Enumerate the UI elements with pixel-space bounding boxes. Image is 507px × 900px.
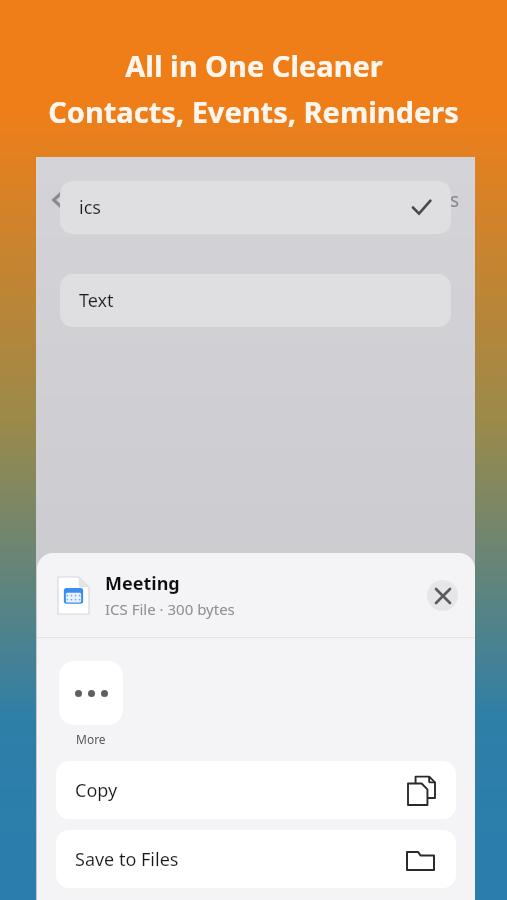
- button[interactable]: Text: [60, 274, 451, 327]
- staticText: Back: [73, 187, 116, 213]
- staticText: ICS File · 300 bytes: [105, 599, 235, 619]
- staticText: More: [76, 731, 106, 747]
- staticText: All in One Cleaner: [125, 46, 383, 85]
- staticText: Save to Files: [75, 847, 179, 872]
- button[interactable]: Save to Files: [56, 830, 456, 888]
- staticText: Text: [79, 288, 114, 313]
- button[interactable]: ics: [433, 184, 463, 216]
- button[interactable]: Text: [382, 184, 425, 216]
- staticText: ics: [436, 187, 460, 213]
- staticText: ics: [79, 195, 101, 220]
- button[interactable]: ics: [60, 181, 451, 234]
- staticText: Meeting: [105, 571, 180, 596]
- button[interactable]: Copy: [56, 761, 456, 819]
- button[interactable]: Back: [48, 181, 120, 219]
- staticText: Text: [385, 187, 422, 213]
- staticText: Copy: [75, 778, 118, 803]
- button[interactable]: Close: [427, 580, 458, 611]
- button[interactable]: More: [59, 661, 123, 725]
- staticText: Contacts, Events, Reminders: [48, 92, 459, 131]
